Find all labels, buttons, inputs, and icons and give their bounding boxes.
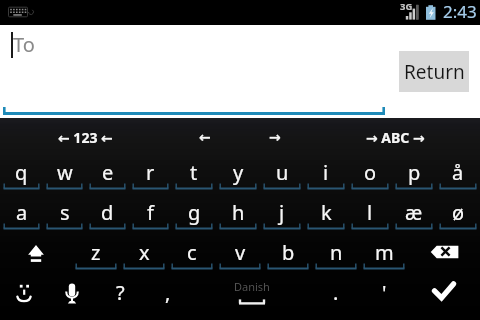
button[interactable]: c	[168, 238, 216, 278]
staticText: s	[60, 199, 70, 226]
staticText: j	[279, 199, 285, 226]
staticText: r	[146, 159, 155, 186]
button[interactable]: p	[392, 158, 436, 198]
staticText: g	[188, 199, 201, 226]
button[interactable]: l	[348, 198, 392, 238]
button[interactable]: ø	[436, 198, 480, 238]
button[interactable]: i	[304, 158, 348, 198]
button[interactable]: Delete	[408, 238, 480, 278]
staticText: i	[323, 159, 329, 186]
staticText: 3G	[400, 0, 413, 13]
staticText: → ABC →	[366, 128, 425, 147]
staticText: x	[139, 239, 150, 266]
button[interactable]: d	[86, 198, 129, 238]
staticText: w	[57, 159, 73, 186]
button[interactable]: x	[120, 238, 168, 278]
button[interactable]: w	[43, 158, 86, 198]
staticText: å	[452, 159, 464, 186]
button[interactable]: Voice input	[48, 278, 96, 320]
staticText: Danish	[234, 279, 270, 294]
staticText: ← 123 ←	[58, 128, 113, 147]
staticText: p	[408, 159, 421, 186]
button[interactable]: Emoji	[0, 278, 48, 320]
staticText: y	[233, 159, 244, 186]
button[interactable]: r	[129, 158, 172, 198]
staticText: æ	[405, 199, 423, 226]
button[interactable]: k	[304, 198, 348, 238]
button[interactable]: å	[436, 158, 480, 198]
button[interactable]: ,	[144, 278, 192, 320]
staticText: ø	[452, 199, 465, 226]
staticText: ,	[165, 279, 171, 306]
staticText: o	[364, 159, 377, 186]
staticText: v	[235, 239, 246, 266]
button[interactable]: ←	[170, 118, 240, 158]
button[interactable]: v	[216, 238, 264, 278]
staticText: 2:43	[443, 0, 477, 23]
button[interactable]: f	[129, 198, 172, 238]
button[interactable]: e	[86, 158, 129, 198]
staticText: h	[232, 199, 245, 226]
button[interactable]: → ABC →	[310, 118, 480, 158]
button[interactable]: Shift	[0, 238, 72, 278]
staticText: n	[330, 239, 343, 266]
staticText: q	[15, 159, 28, 186]
staticText: z	[91, 239, 101, 266]
button[interactable]: y	[216, 158, 260, 198]
staticText: c	[187, 239, 197, 266]
staticText: b	[282, 239, 295, 266]
button[interactable]: n	[312, 238, 360, 278]
button[interactable]: ← 123 ←	[0, 118, 170, 158]
button[interactable]: Return	[399, 51, 469, 92]
button[interactable]: ?	[96, 278, 144, 320]
staticText: Return	[404, 59, 465, 85]
button[interactable]: Danish	[192, 278, 312, 320]
button[interactable]: h	[216, 198, 260, 238]
button[interactable]: u	[260, 158, 304, 198]
staticText: f	[147, 199, 154, 226]
button[interactable]: .	[312, 278, 360, 320]
button[interactable]: a	[0, 198, 43, 238]
staticText: d	[101, 199, 114, 226]
staticText: u	[276, 159, 289, 186]
button[interactable]: o	[348, 158, 392, 198]
staticText: ←	[199, 129, 211, 145]
button[interactable]: →	[240, 118, 310, 158]
button[interactable]: '	[360, 278, 408, 320]
button[interactable]: s	[43, 198, 86, 238]
staticText: t	[190, 159, 198, 186]
staticText: ?	[116, 279, 125, 306]
button[interactable]: b	[264, 238, 312, 278]
button[interactable]: t	[172, 158, 216, 198]
staticText: To	[13, 31, 35, 58]
button[interactable]: q	[0, 158, 43, 198]
button[interactable]: To	[3, 29, 385, 115]
button[interactable]: m	[360, 238, 408, 278]
button[interactable]: Enter	[408, 278, 480, 320]
staticText: l	[367, 199, 373, 226]
button[interactable]: g	[172, 198, 216, 238]
staticText: '	[382, 279, 387, 306]
staticText: a	[16, 199, 28, 226]
button[interactable]: z	[72, 238, 120, 278]
staticText: m	[375, 239, 394, 266]
button[interactable]: j	[260, 198, 304, 238]
staticText: →	[269, 129, 281, 145]
staticText: .	[333, 279, 339, 306]
button[interactable]: æ	[392, 198, 436, 238]
staticText: k	[321, 199, 332, 226]
staticText: e	[102, 159, 114, 186]
